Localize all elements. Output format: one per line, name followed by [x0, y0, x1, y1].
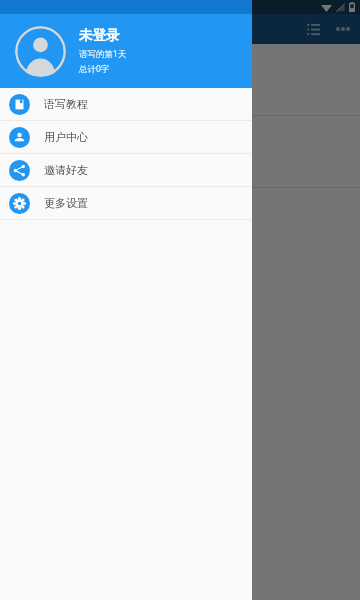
staticText: 语写教程 — [44, 97, 88, 111]
staticText: 分钟 — [177, 151, 197, 164]
button[interactable]: 0 — [0, 44, 360, 115]
staticText: 0 — [168, 65, 181, 94]
button[interactable]: Close navigation drawer — [0, 0, 360, 600]
staticText: 未登录 — [79, 27, 120, 44]
staticText: 邀请好友 — [44, 163, 88, 177]
staticText: 总计0字 — [79, 63, 110, 75]
button[interactable]: 用户中心 — [0, 121, 252, 153]
staticText: 用户中心 — [44, 130, 88, 144]
button[interactable]: 未登录 — [0, 14, 252, 88]
staticText: 语写的第1天 — [79, 48, 127, 60]
button[interactable]: 更多设置 — [0, 187, 252, 219]
button[interactable]: 0 — [0, 116, 360, 187]
button[interactable]: List view — [298, 14, 328, 44]
button[interactable]: 语写教程 — [0, 88, 252, 120]
button[interactable]: More options — [328, 14, 358, 44]
staticText: 字 — [182, 79, 192, 92]
staticText: 更多设置 — [44, 196, 88, 210]
button[interactable]: 邀请好友 — [0, 154, 252, 186]
